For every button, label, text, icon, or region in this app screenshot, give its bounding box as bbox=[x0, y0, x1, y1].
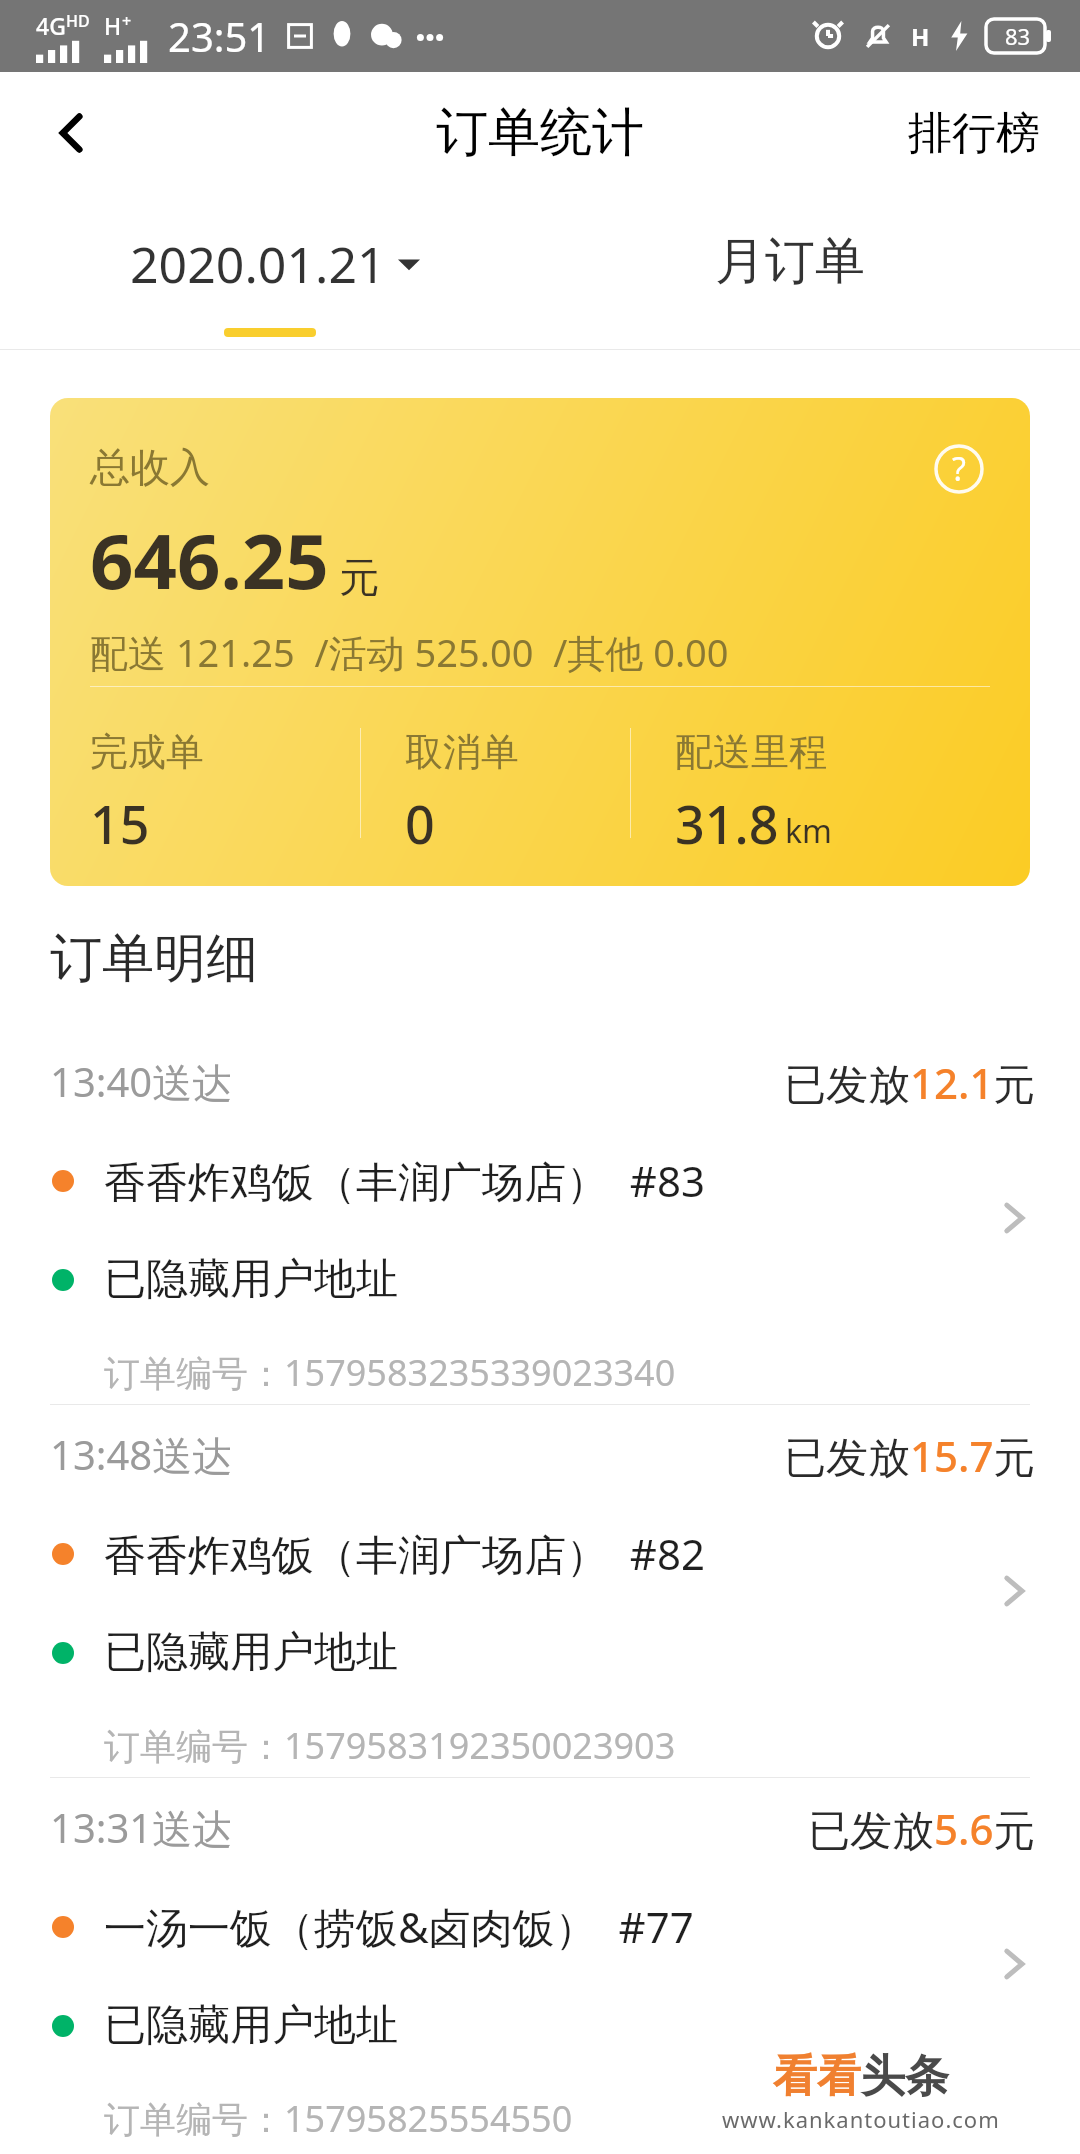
staticText: 13:40送达 bbox=[50, 1054, 233, 1109]
button[interactable]: 13:40送达 bbox=[0, 1032, 1080, 1404]
staticText: 2020.01.21 bbox=[130, 230, 386, 298]
staticText: HD bbox=[66, 10, 90, 32]
staticText: 已隐藏用户地址 bbox=[104, 1626, 398, 1679]
staticText: 一汤一饭（捞饭&卤肉饭） #77 bbox=[104, 1898, 694, 1955]
staticText: + bbox=[122, 10, 132, 32]
staticText: 0 bbox=[405, 788, 435, 859]
staticText: 取消单 bbox=[405, 728, 519, 776]
button[interactable]: 排行榜 bbox=[868, 86, 1080, 181]
staticText: 83 bbox=[1005, 21, 1031, 51]
button[interactable]: 13:31送达 bbox=[0, 1778, 1080, 2150]
staticText: 23:51 bbox=[168, 9, 271, 63]
staticText: 4G bbox=[36, 10, 66, 41]
staticText: 总收入 bbox=[90, 442, 210, 492]
staticText: H bbox=[911, 20, 930, 53]
staticText: 排行榜 bbox=[908, 106, 1040, 161]
staticText: km bbox=[785, 809, 833, 853]
staticText: ? bbox=[952, 447, 966, 491]
staticText: 已发放12.1元 bbox=[784, 1054, 1036, 1111]
staticText: 订单明细 bbox=[50, 926, 258, 992]
staticText: 订单编号：1579583192350023903 bbox=[104, 1721, 676, 1770]
staticText: 已发放5.6元 bbox=[808, 1800, 1036, 1857]
staticText: 看看头条 bbox=[773, 2049, 949, 2104]
staticText: H bbox=[104, 10, 122, 41]
staticText: 订单统计 bbox=[436, 100, 644, 166]
staticText: 配送里程 bbox=[675, 728, 827, 776]
staticText: 已隐藏用户地址 bbox=[104, 1253, 398, 1306]
staticText: 已隐藏用户地址 bbox=[104, 1999, 398, 2052]
staticText: 完成单 bbox=[90, 728, 204, 776]
staticText: 13:48送达 bbox=[50, 1427, 233, 1482]
staticText: 13:31送达 bbox=[50, 1800, 233, 1855]
staticText: 订单编号：15795825554550 bbox=[104, 2094, 573, 2143]
staticText: 配送 121.25 /活动 525.00 /其他 0.00 bbox=[90, 626, 729, 678]
staticText: 订单编号：1579583235339023340 bbox=[104, 1348, 676, 1397]
staticText: 646.25 bbox=[90, 508, 329, 612]
staticText: 15 bbox=[90, 788, 150, 859]
staticText: 元 bbox=[339, 552, 379, 602]
button[interactable]: 说明 bbox=[924, 434, 994, 504]
button[interactable]: 13:48送达 bbox=[0, 1405, 1080, 1777]
staticText: 香香炸鸡饭（丰润广场店） #82 bbox=[104, 1525, 706, 1582]
staticText: www.kankantoutiao.com bbox=[722, 2104, 1000, 2134]
button[interactable]: 返回 bbox=[30, 91, 114, 175]
staticText: 香香炸鸡饭（丰润广场店） #83 bbox=[104, 1152, 706, 1209]
button[interactable]: 2020.01.21 bbox=[120, 216, 430, 312]
button[interactable]: 月订单 bbox=[695, 216, 885, 307]
staticText: 月订单 bbox=[715, 230, 865, 293]
button[interactable]: 总收入 bbox=[50, 398, 1030, 886]
staticText: 31.8 bbox=[675, 788, 779, 859]
staticText: 已发放15.7元 bbox=[784, 1427, 1036, 1484]
